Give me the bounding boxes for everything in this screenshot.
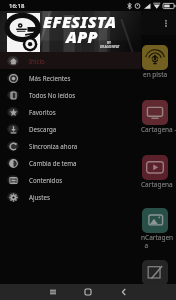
button[interactable]: Contenidos: [0, 171, 141, 188]
staticText: Favoritos: [29, 108, 56, 116]
staticText: APP: [66, 26, 98, 48]
staticText: 16:18: [9, 2, 25, 10]
button[interactable]: Recents: [45, 284, 61, 300]
button[interactable]: Más Recientes: [0, 69, 141, 86]
button[interactable]: Ajustes: [0, 188, 141, 205]
button[interactable]: Home: [80, 284, 96, 300]
button[interactable]: Inicio: [0, 52, 141, 69]
button[interactable]: Favoritos: [0, 103, 141, 120]
staticText: BY: [107, 41, 112, 45]
staticText: Descarga: [29, 125, 57, 133]
staticText: Cartagena: [141, 180, 176, 189]
button[interactable]: Todos No leídos: [0, 86, 141, 103]
button[interactable]: Cambia de tema: [0, 154, 141, 171]
button[interactable]: [142, 155, 168, 180]
staticText: en pista: [143, 70, 176, 79]
button[interactable]: Back: [116, 284, 132, 300]
button[interactable]: [142, 260, 168, 285]
button[interactable]: More options: [160, 17, 172, 29]
staticText: Inicio: [29, 57, 45, 65]
staticText: Cartagena -: [141, 125, 176, 134]
button[interactable]: [142, 100, 168, 125]
button[interactable]: Sincroniza ahora: [0, 137, 141, 154]
staticText: nCartagen a: [141, 233, 176, 250]
button[interactable]: [142, 45, 168, 70]
staticText: Sincroniza ahora: [29, 142, 78, 150]
staticText: Más Recientes: [29, 74, 71, 82]
button[interactable]: Descarga: [0, 120, 141, 137]
staticText: Todos No leídos: [29, 91, 76, 99]
staticText: Contenidos: [29, 176, 63, 184]
button[interactable]: [142, 208, 168, 233]
staticText: Ajustes: [29, 193, 51, 201]
staticText: DRAGONPAT: [100, 45, 120, 49]
staticText: EFESISTA: [43, 11, 117, 33]
staticText: Cambia de tema: [29, 159, 77, 167]
